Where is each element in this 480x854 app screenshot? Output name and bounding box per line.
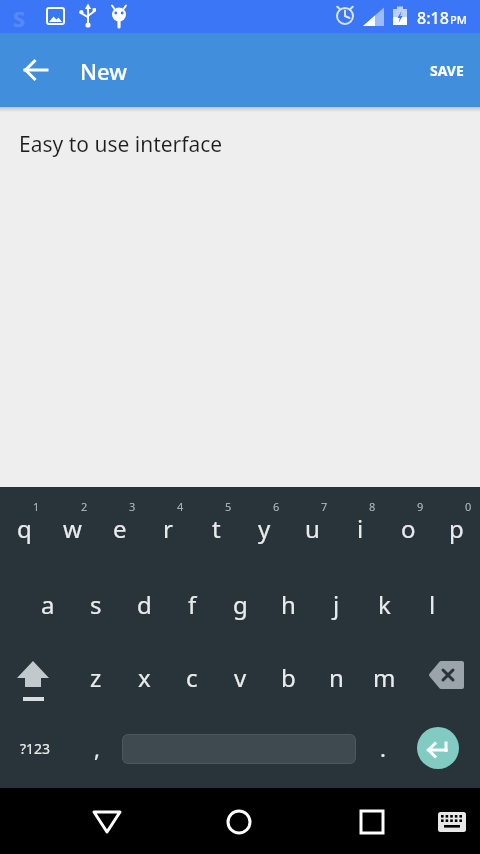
button[interactable]: p — [432, 491, 480, 565]
button[interactable]: d — [120, 567, 168, 641]
staticText: u — [305, 512, 320, 545]
button[interactable] — [207, 790, 271, 854]
staticText: 8:18 — [417, 7, 449, 29]
staticText: q — [17, 512, 32, 545]
staticText: New — [80, 56, 128, 86]
button[interactable] — [340, 790, 404, 854]
button[interactable]: t — [192, 491, 240, 565]
button[interactable]: k — [360, 567, 408, 641]
button[interactable]: . — [359, 711, 407, 785]
button[interactable]: i — [336, 491, 384, 565]
staticText: h — [281, 588, 296, 621]
button[interactable]: z — [72, 640, 120, 714]
button[interactable]: g — [216, 567, 264, 641]
staticText: x — [138, 661, 151, 694]
button[interactable]: x — [120, 640, 168, 714]
button[interactable]: j — [312, 567, 360, 641]
staticText: w — [63, 512, 82, 545]
staticText: ?123 — [20, 739, 51, 758]
staticText: a — [41, 588, 55, 621]
staticText: 5 — [225, 499, 232, 514]
button[interactable]: SAVE — [422, 53, 472, 88]
staticText: 2 — [81, 499, 88, 514]
staticText: r — [163, 512, 173, 545]
staticText: 6 — [273, 499, 280, 514]
button[interactable]: w — [48, 491, 96, 565]
staticText: 1 — [33, 499, 40, 514]
button[interactable]: Easy to use interface — [0, 107, 480, 487]
staticText: m — [373, 661, 396, 694]
button[interactable]: n — [312, 640, 360, 714]
button[interactable]: l — [408, 567, 456, 641]
button[interactable] — [14, 48, 58, 92]
staticText: c — [186, 661, 198, 694]
staticText: S — [13, 3, 26, 33]
button[interactable]: c — [168, 640, 216, 714]
staticText: SAVE — [430, 61, 464, 80]
staticText: PM — [450, 12, 467, 27]
staticText: n — [329, 661, 344, 694]
staticText: 7 — [321, 499, 328, 514]
button[interactable]: s — [72, 567, 120, 641]
staticText: 4 — [177, 499, 184, 514]
button[interactable]: u — [288, 491, 336, 565]
button[interactable]: f — [168, 567, 216, 641]
button[interactable]: a — [24, 567, 72, 641]
staticText: z — [90, 661, 102, 694]
button[interactable] — [0, 635, 66, 709]
button[interactable]: y — [240, 491, 288, 565]
button[interactable]: v — [216, 640, 264, 714]
button[interactable] — [417, 727, 459, 769]
button[interactable]: r — [144, 491, 192, 565]
button[interactable]: e — [96, 491, 144, 565]
staticText: k — [378, 588, 391, 621]
button[interactable] — [414, 635, 480, 709]
button[interactable]: ?123 — [0, 709, 70, 788]
button[interactable]: h — [264, 567, 312, 641]
staticText: . — [380, 733, 386, 763]
staticText: f — [188, 588, 197, 621]
button[interactable] — [75, 790, 139, 854]
button[interactable]: , — [73, 711, 121, 785]
staticText: t — [212, 512, 221, 545]
staticText: i — [357, 512, 364, 545]
button[interactable]: o — [384, 491, 432, 565]
staticText: b — [281, 661, 296, 694]
staticText: 8 — [369, 499, 376, 514]
staticText: l — [429, 588, 436, 621]
button[interactable]: q — [0, 491, 48, 565]
staticText: p — [449, 512, 464, 545]
button[interactable]: m — [360, 640, 408, 714]
button[interactable]: b — [264, 640, 312, 714]
staticText: 9 — [417, 499, 424, 514]
staticText: g — [233, 588, 248, 621]
button[interactable] — [122, 734, 356, 764]
staticText: v — [234, 661, 247, 694]
staticText: o — [401, 512, 416, 545]
staticText: Easy to use interface — [19, 130, 223, 159]
staticText: 0 — [465, 499, 472, 514]
staticText: d — [137, 588, 152, 621]
staticText: , — [94, 733, 100, 763]
button[interactable] — [430, 793, 474, 849]
staticText: s — [90, 588, 102, 621]
staticText: y — [258, 512, 271, 545]
staticText: 3 — [129, 499, 136, 514]
staticText: j — [333, 588, 340, 621]
staticText: e — [113, 512, 127, 545]
